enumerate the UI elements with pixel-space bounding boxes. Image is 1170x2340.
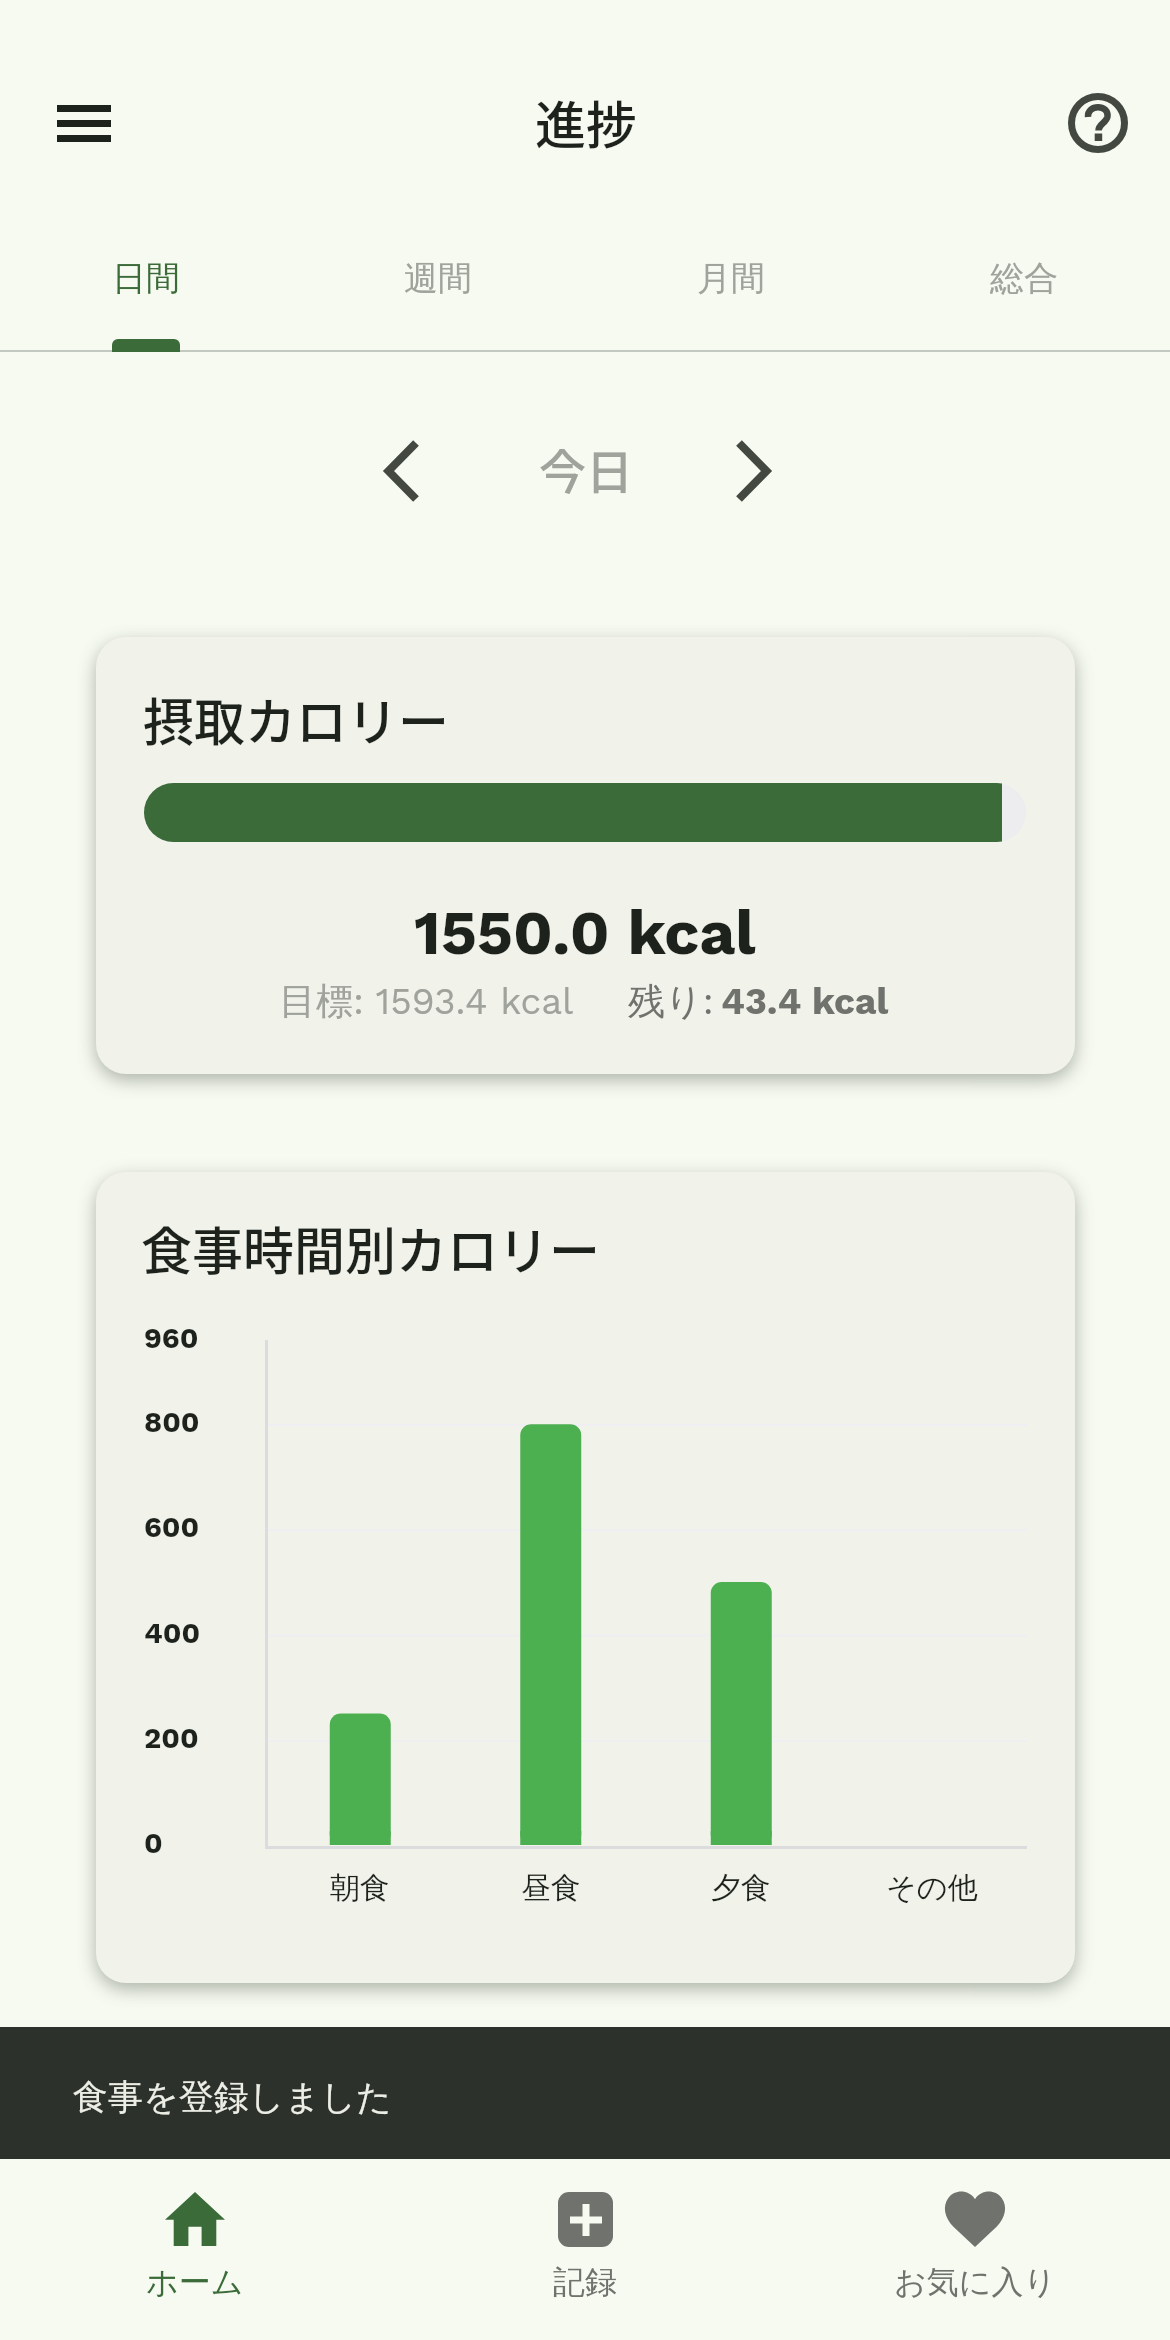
staticText: 400 bbox=[144, 1616, 201, 1650]
button[interactable]: Next day bbox=[695, 428, 815, 514]
button[interactable]: Menu bbox=[36, 63, 132, 183]
button[interactable]: 週間 bbox=[292, 200, 584, 352]
staticText: 週間 bbox=[404, 257, 472, 300]
staticText: ホーム bbox=[146, 2262, 244, 2302]
staticText: 朝食 bbox=[330, 1869, 390, 1907]
button[interactable]: Previous day bbox=[340, 428, 460, 514]
staticText: 月間 bbox=[697, 257, 765, 300]
staticText: 食事時間別カロリー bbox=[141, 1211, 601, 1285]
button[interactable]: Help bbox=[1038, 63, 1158, 183]
staticText: 200 bbox=[144, 1721, 199, 1755]
button[interactable]: ホーム bbox=[0, 2159, 390, 2340]
staticText: 進捗 bbox=[535, 85, 638, 159]
staticText: 800 bbox=[144, 1405, 200, 1439]
staticText: 1550.0 kcal bbox=[414, 896, 756, 969]
staticText: 43.4 kcal bbox=[721, 980, 889, 1023]
button[interactable]: 日間 bbox=[0, 200, 292, 352]
staticText: 日間 bbox=[112, 257, 180, 300]
button[interactable]: お気に入り bbox=[780, 2159, 1170, 2340]
staticText: 摂取カロリー bbox=[143, 682, 450, 756]
staticText: 600 bbox=[144, 1510, 200, 1544]
staticText: お気に入り bbox=[894, 2262, 1057, 2302]
staticText: 目標: 1593.4 kcal bbox=[279, 978, 574, 1025]
staticText: 昼食 bbox=[521, 1869, 581, 1907]
button[interactable]: 摂取カロリー bbox=[96, 637, 1075, 1074]
staticText: 記録 bbox=[553, 2262, 617, 2302]
button[interactable]: 総合 bbox=[877, 200, 1170, 352]
staticText: その他 bbox=[886, 1869, 978, 1907]
staticText: 総合 bbox=[990, 257, 1058, 300]
button[interactable]: 月間 bbox=[584, 200, 877, 352]
staticText: 0 bbox=[144, 1826, 163, 1860]
staticText: 今日 bbox=[539, 434, 633, 502]
staticText: 960 bbox=[144, 1321, 199, 1355]
staticText: 食事を登録しました bbox=[73, 2075, 393, 2119]
staticText: 夕食 bbox=[711, 1869, 771, 1907]
button[interactable]: 記録 bbox=[390, 2159, 780, 2340]
staticText: 残り: bbox=[628, 978, 714, 1025]
button[interactable]: 食事時間別カロリー bbox=[96, 1172, 1075, 1983]
